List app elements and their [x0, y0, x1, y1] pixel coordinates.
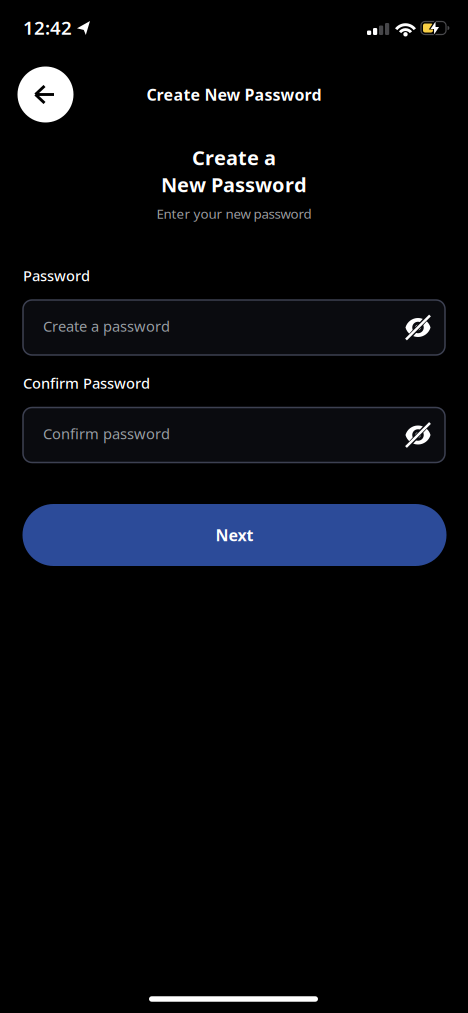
staticText: New Password	[161, 171, 307, 198]
staticText: 12:42	[23, 15, 72, 40]
staticText: Create a password	[43, 316, 170, 336]
staticText: Confirm password	[43, 424, 170, 443]
staticText: Create New Password	[146, 84, 321, 105]
staticText: Enter your new password	[156, 205, 311, 222]
staticText: Next	[215, 524, 253, 546]
staticText: Confirm Password	[23, 373, 150, 393]
staticText: Create a	[192, 144, 276, 171]
staticText: Password	[23, 266, 90, 285]
